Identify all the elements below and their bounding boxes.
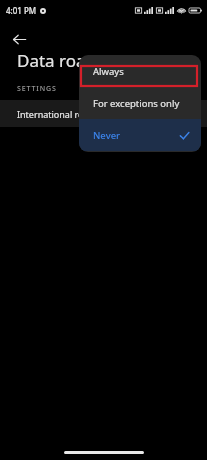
staticText: Never	[93, 129, 121, 142]
staticText: 4:01 PM	[6, 5, 37, 16]
staticText: Always	[93, 65, 124, 78]
staticText: Data roaming	[17, 49, 127, 72]
button[interactable]: Never	[79, 119, 201, 151]
button[interactable]: Back	[8, 28, 30, 50]
staticText: For exceptions only	[93, 97, 180, 110]
button[interactable]: International roaming	[0, 100, 207, 127]
staticText: SETTINGS	[17, 84, 57, 94]
staticText: International roaming	[17, 108, 111, 120]
button[interactable]: Always	[79, 55, 201, 87]
button[interactable]: For exceptions only	[79, 87, 201, 119]
